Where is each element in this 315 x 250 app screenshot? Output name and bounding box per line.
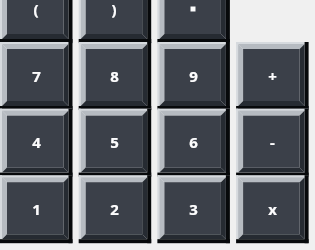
staticText: - — [270, 132, 275, 152]
button[interactable]: Open parenthesis — [0, 0, 72, 43]
staticText: + — [268, 66, 277, 86]
staticText: 9 — [189, 66, 198, 86]
button[interactable]: 2 — [78, 175, 150, 243]
staticText: 1 — [32, 199, 41, 219]
button[interactable]: Plus — [236, 42, 308, 110]
staticText: 8 — [110, 66, 119, 86]
staticText: ) — [111, 0, 117, 19]
button[interactable]: Close parenthesis — [78, 0, 150, 43]
button[interactable]: 7 — [0, 42, 72, 110]
staticText: 4 — [32, 132, 41, 152]
staticText: 2 — [110, 199, 119, 219]
staticText: 3 — [189, 199, 198, 219]
button[interactable]: 5 — [78, 108, 150, 176]
staticText: x — [268, 199, 277, 219]
button[interactable]: 8 — [78, 42, 150, 110]
button[interactable]: 9 — [157, 42, 229, 110]
button[interactable]: 3 — [157, 175, 229, 243]
staticText: 5 — [110, 132, 119, 152]
button[interactable]: 4 — [0, 108, 72, 176]
button[interactable]: Multiply — [236, 175, 308, 243]
staticText: ( — [33, 0, 39, 19]
button[interactable]: Minus — [236, 108, 308, 176]
staticText: 6 — [189, 132, 198, 152]
staticText: 7 — [32, 66, 41, 86]
button[interactable]: 1 — [0, 175, 72, 243]
button[interactable]: Decimal point — [157, 0, 229, 43]
button[interactable]: 6 — [157, 108, 229, 176]
